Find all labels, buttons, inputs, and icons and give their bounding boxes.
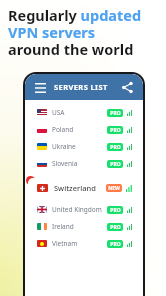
staticText: USA bbox=[52, 108, 65, 117]
staticText: PRO bbox=[110, 110, 121, 117]
staticText: PRO bbox=[110, 161, 121, 168]
staticText: Regularly updated VPN servers around the… bbox=[8, 5, 142, 59]
button[interactable]: USA bbox=[37, 104, 133, 121]
staticText: Ireland bbox=[52, 222, 74, 231]
staticText: PRO bbox=[110, 241, 121, 248]
staticText: Slovenia bbox=[52, 159, 78, 168]
staticText: Poland bbox=[52, 125, 74, 134]
button[interactable]: Share bbox=[119, 79, 135, 95]
staticText: PRO bbox=[110, 207, 121, 214]
staticText: United Kingdom bbox=[52, 205, 102, 214]
button[interactable]: Slovenia bbox=[37, 155, 133, 172]
staticText: PRO bbox=[110, 144, 121, 151]
staticText: PRO bbox=[110, 127, 121, 134]
button[interactable]: Ukraine bbox=[37, 138, 133, 155]
button[interactable]: United Kingdom bbox=[37, 201, 133, 218]
staticText: Ukraine bbox=[52, 142, 76, 151]
button[interactable]: Switzerland bbox=[28, 178, 140, 198]
button[interactable]: Menu bbox=[33, 80, 47, 94]
button[interactable]: Ireland bbox=[37, 218, 133, 235]
button[interactable]: Poland bbox=[37, 121, 133, 138]
staticText: PRO bbox=[110, 224, 121, 231]
staticText: Vietnam bbox=[52, 239, 78, 248]
staticText: SERVERS LIST bbox=[54, 82, 108, 92]
staticText: NEW bbox=[108, 185, 120, 192]
staticText: Switzerland bbox=[54, 183, 96, 193]
button[interactable]: Vietnam bbox=[37, 235, 133, 252]
